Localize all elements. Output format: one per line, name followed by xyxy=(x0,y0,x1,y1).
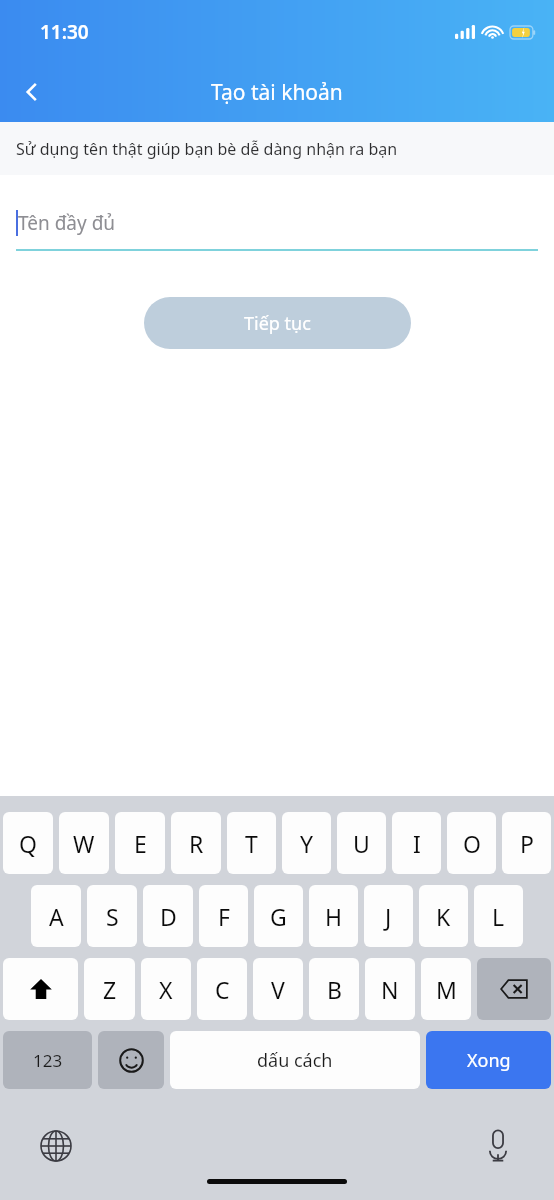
button[interactable]: L xyxy=(474,885,523,947)
button[interactable]: E xyxy=(115,812,165,874)
staticText: Tạo tài khoản xyxy=(211,78,343,107)
button[interactable]: A xyxy=(31,885,81,947)
button[interactable]: Z xyxy=(84,958,135,1020)
staticText: 11:30 xyxy=(40,19,89,45)
button[interactable]: U xyxy=(337,812,386,874)
staticText: B xyxy=(327,974,342,1005)
button[interactable]: Tiếp tục xyxy=(144,297,411,349)
button[interactable]: G xyxy=(254,885,303,947)
button[interactable]: 123 xyxy=(3,1031,92,1089)
staticText: A xyxy=(49,901,64,932)
staticText: H xyxy=(325,901,343,932)
button[interactable]: Backspace xyxy=(477,958,551,1020)
staticText: G xyxy=(270,901,287,932)
staticText: S xyxy=(106,901,119,932)
staticText: R xyxy=(189,828,204,859)
button[interactable]: W xyxy=(59,812,109,874)
staticText: 123 xyxy=(33,1049,63,1072)
button[interactable]: I xyxy=(392,812,441,874)
button[interactable]: H xyxy=(309,885,358,947)
button[interactable]: S xyxy=(87,885,137,947)
staticText: O xyxy=(463,828,481,859)
button[interactable]: Shift xyxy=(3,958,78,1020)
button[interactable]: Y xyxy=(282,812,331,874)
staticText: Sử dụng tên thật giúp bạn bè dễ dàng nhậ… xyxy=(16,138,398,160)
staticText: K xyxy=(436,901,451,932)
staticText: C xyxy=(215,974,230,1005)
staticText: Y xyxy=(300,828,314,859)
button[interactable]: N xyxy=(365,958,415,1020)
staticText: I xyxy=(413,828,421,859)
button[interactable]: V xyxy=(253,958,303,1020)
button[interactable]: Change keyboard language xyxy=(32,1122,80,1170)
button[interactable]: T xyxy=(227,812,276,874)
staticText: V xyxy=(271,974,285,1005)
button[interactable]: Q xyxy=(3,812,53,874)
button[interactable]: Emoji xyxy=(98,1031,164,1089)
staticText: N xyxy=(381,974,399,1005)
button[interactable]: D xyxy=(143,885,193,947)
button[interactable]: R xyxy=(171,812,221,874)
button[interactable]: K xyxy=(419,885,468,947)
staticText: Z xyxy=(103,974,117,1005)
staticText: F xyxy=(218,901,230,932)
button[interactable]: F xyxy=(199,885,248,947)
button[interactable]: Back xyxy=(8,68,56,116)
staticText: E xyxy=(134,828,147,859)
staticText: X xyxy=(159,974,173,1005)
staticText: dấu cách xyxy=(257,1048,333,1073)
button[interactable]: C xyxy=(197,958,247,1020)
staticText: P xyxy=(520,828,534,859)
button[interactable]: Dictation xyxy=(474,1122,522,1170)
staticText: T xyxy=(245,828,258,859)
button[interactable]: B xyxy=(309,958,359,1020)
staticText: M xyxy=(436,974,457,1005)
button[interactable]: M xyxy=(421,958,471,1020)
staticText: U xyxy=(353,828,370,859)
button[interactable]: O xyxy=(447,812,496,874)
staticText: W xyxy=(73,828,95,859)
staticText: Q xyxy=(19,828,37,859)
staticText: Tên đầy đủ xyxy=(18,210,116,236)
staticText: L xyxy=(492,901,505,932)
button[interactable]: P xyxy=(502,812,551,874)
staticText: Tiếp tục xyxy=(244,311,311,336)
staticText: D xyxy=(160,901,177,932)
button[interactable]: X xyxy=(141,958,191,1020)
button[interactable]: dấu cách xyxy=(170,1031,420,1089)
button[interactable]: Xong xyxy=(426,1031,551,1089)
staticText: J xyxy=(385,901,392,932)
staticText: Xong xyxy=(467,1048,511,1073)
button[interactable]: J xyxy=(364,885,413,947)
